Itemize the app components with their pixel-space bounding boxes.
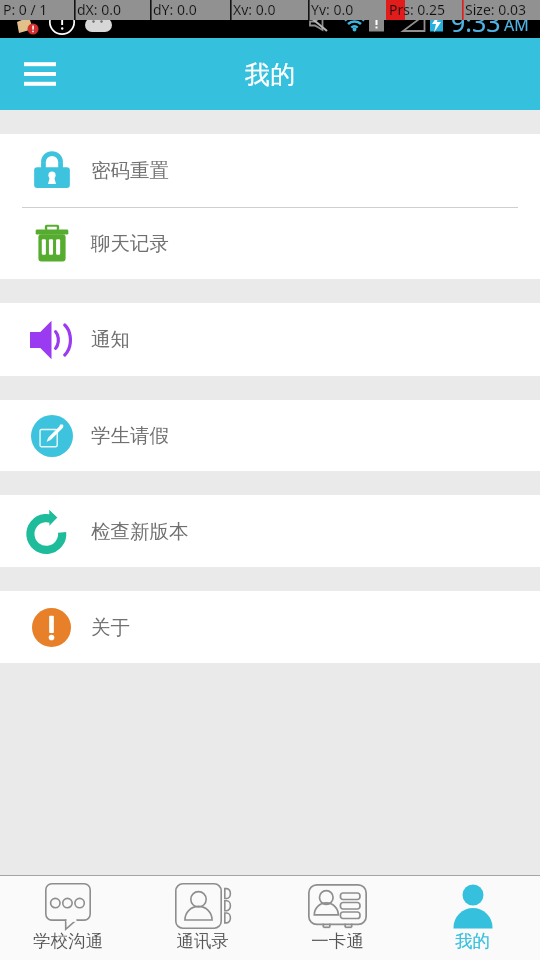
staticText: Size: 0.03 xyxy=(465,0,526,19)
staticText: 聊天记录 xyxy=(91,231,169,256)
button[interactable]: 我的 xyxy=(405,876,540,960)
staticText: Xv: 0.0 xyxy=(233,0,276,19)
button[interactable]: 学生请假 xyxy=(0,400,540,471)
staticText: 通讯录 xyxy=(176,930,229,952)
staticText: 检查新版本 xyxy=(91,519,189,544)
button[interactable]: 检查新版本 xyxy=(0,495,540,567)
staticText: Prs: 0.25 xyxy=(389,0,446,19)
staticText: dX: 0.0 xyxy=(77,0,121,19)
button[interactable]: 学校沟通 xyxy=(0,876,135,960)
staticText: 密码重置 xyxy=(91,158,169,183)
staticText: 一卡通 xyxy=(311,930,364,952)
staticText: 学生请假 xyxy=(91,423,169,448)
button[interactable]: 通知 xyxy=(0,303,540,376)
staticText: 9:33 xyxy=(451,5,501,39)
staticText: 学校沟通 xyxy=(33,930,103,952)
staticText: Yv: 0.0 xyxy=(311,0,354,19)
button[interactable]: 通讯录 xyxy=(135,876,270,960)
button[interactable]: 关于 xyxy=(0,591,540,663)
staticText: AM xyxy=(504,14,529,36)
button[interactable]: 一卡通 xyxy=(270,876,405,960)
staticText: P: 0 / 1 xyxy=(3,0,48,19)
staticText: 通知 xyxy=(91,327,130,352)
staticText: 我的 xyxy=(455,930,490,952)
staticText: 我的 xyxy=(245,59,295,90)
staticText: 关于 xyxy=(91,615,130,640)
staticText: dY: 0.0 xyxy=(153,0,197,19)
button[interactable]: 密码重置 xyxy=(0,134,540,207)
button[interactable]: Open navigation menu xyxy=(1,38,79,110)
button[interactable]: 聊天记录 xyxy=(0,208,540,279)
